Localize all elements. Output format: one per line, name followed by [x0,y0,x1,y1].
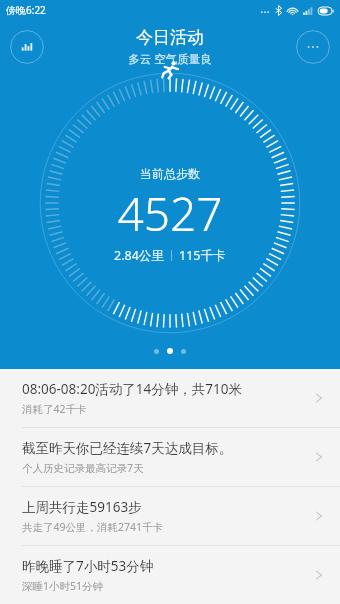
staticText: 上周共行走59163步 [22,498,142,516]
button[interactable]: Page 2 [167,348,173,354]
staticText: 共走了49公里，消耗2741千卡 [22,520,164,534]
button[interactable]: 上周共行走59163步 [0,487,340,545]
button[interactable]: Page 1 [154,349,159,354]
button[interactable]: 截至昨天你已经连续7天达成目标。 [0,428,340,486]
staticText: 115千卡 [179,247,226,264]
button[interactable]: Statistics [10,30,44,64]
staticText: 当前总步数 [140,166,200,181]
staticText: 多云 空气质量良 [128,51,212,67]
staticText: 深睡1小时51分钟 [22,579,104,593]
staticText: 4527 [117,182,223,245]
button[interactable]: 昨晚睡了7小时53分钟 [0,546,340,604]
staticText: 傍晚6:22 [6,3,46,17]
staticText: 截至昨天你已经连续7天达成目标。 [22,439,233,457]
button[interactable]: 08:06-08:20活动了14分钟，共710米 [0,369,340,427]
button[interactable]: Page 3 [181,349,186,354]
staticText: 昨晚睡了7小时53分钟 [22,557,154,575]
staticText: 消耗了42千卡 [22,402,87,416]
button[interactable]: More options [296,30,330,64]
staticText: 08:06-08:20活动了14分钟，共710米 [22,380,242,398]
staticText: 今日活动 [136,27,204,48]
staticText: 个人历史记录最高记录7天 [22,461,144,475]
staticText: 2.84公里 [114,247,164,264]
